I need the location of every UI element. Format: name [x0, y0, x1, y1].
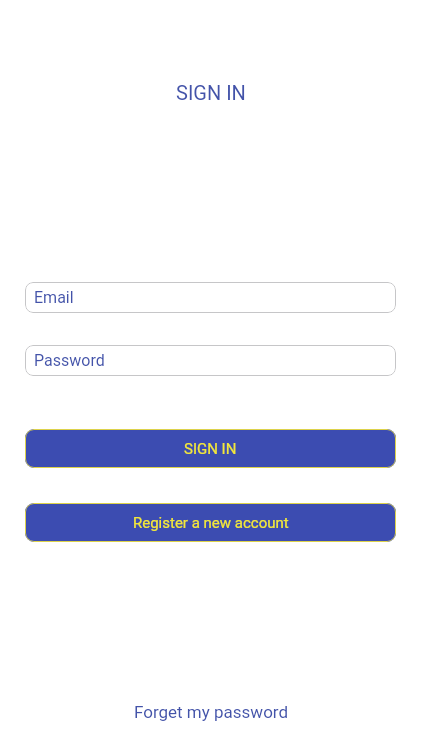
staticText: SIGN IN [176, 81, 246, 104]
button[interactable]: SIGN IN [25, 429, 396, 468]
staticText: Forget my password [134, 702, 289, 722]
staticText: SIGN IN [184, 440, 237, 458]
button[interactable]: Password [25, 345, 396, 376]
button[interactable]: Forget my password [134, 702, 289, 722]
button[interactable]: Email [25, 282, 396, 313]
button[interactable]: Register a new account [25, 503, 396, 542]
staticText: Password [34, 351, 105, 370]
staticText: Email [34, 288, 74, 307]
staticText: Register a new account [133, 514, 289, 532]
